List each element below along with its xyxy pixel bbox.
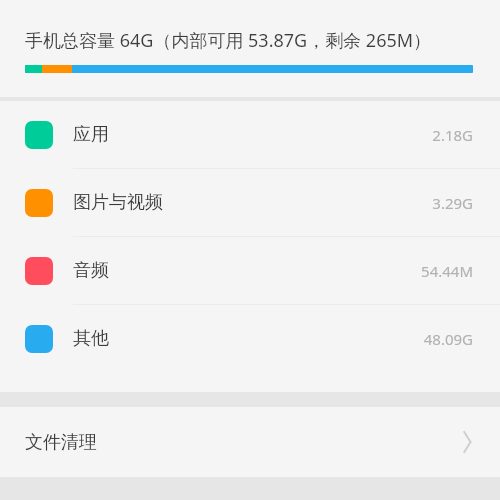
button[interactable]: 音频 [0,237,500,304]
staticText: 应用 [73,123,109,146]
staticText: 手机总容量 64G（内部可用 53.87G，剩余 265M） [25,28,432,53]
staticText: 2.18G [432,125,473,145]
staticText: 其他 [73,327,109,350]
button[interactable]: 图片与视频 [0,169,500,236]
staticText: 3.29G [432,193,473,213]
staticText: 54.44M [421,261,473,281]
button[interactable]: 其他 [0,305,500,372]
staticText: 文件清理 [25,431,97,454]
other: 进入文件清理 [459,428,479,456]
staticText: 图片与视频 [73,191,163,214]
staticText: 音频 [73,259,109,282]
button[interactable]: 应用 [0,101,500,168]
button[interactable]: 文件清理 [0,407,500,477]
staticText: 48.09G [423,329,473,349]
